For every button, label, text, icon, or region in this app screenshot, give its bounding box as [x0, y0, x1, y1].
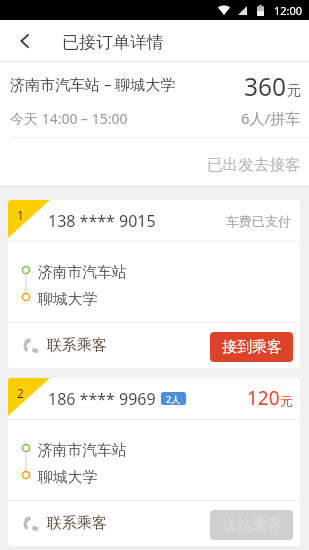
staticText: 聊城大学	[38, 468, 98, 487]
staticText: 2人	[166, 393, 181, 405]
button[interactable]: 已出发去接客	[0, 138, 309, 185]
button[interactable]: 联系乘客	[23, 336, 107, 355]
staticText: 120	[247, 385, 280, 411]
staticText: 已出发去接客	[207, 155, 301, 175]
staticText: 联系乘客	[47, 514, 107, 533]
staticText: 元	[287, 82, 301, 100]
staticText: 济南市汽车站	[38, 263, 127, 282]
staticText: 今天 14:00 – 15:00	[10, 109, 128, 128]
staticText: 已接订单详情	[62, 32, 164, 53]
staticText: 1	[17, 207, 24, 223]
staticText: 济南市汽车站	[38, 441, 127, 460]
staticText: 接到乘客	[222, 338, 282, 357]
staticText: 186 **** 9969	[48, 388, 156, 410]
staticText: 济南市汽车站 – 聊城大学	[10, 74, 176, 94]
staticText: 12:00	[274, 3, 303, 18]
staticText: 车费已支付	[226, 213, 291, 229]
staticText: 送达乘客	[222, 516, 282, 535]
staticText: 元	[280, 393, 293, 409]
button[interactable]: 联系乘客	[23, 514, 107, 533]
staticText: 6人/拼车	[241, 108, 301, 128]
button[interactable]: 送达乘客	[210, 510, 293, 540]
staticText: 138 **** 9015	[48, 210, 156, 232]
staticText: 360	[244, 70, 287, 103]
staticText: 聊城大学	[38, 290, 98, 309]
staticText: 联系乘客	[47, 336, 107, 355]
button[interactable]: Back	[0, 20, 44, 61]
staticText: 2	[17, 385, 24, 401]
button[interactable]: 接到乘客	[210, 332, 293, 362]
